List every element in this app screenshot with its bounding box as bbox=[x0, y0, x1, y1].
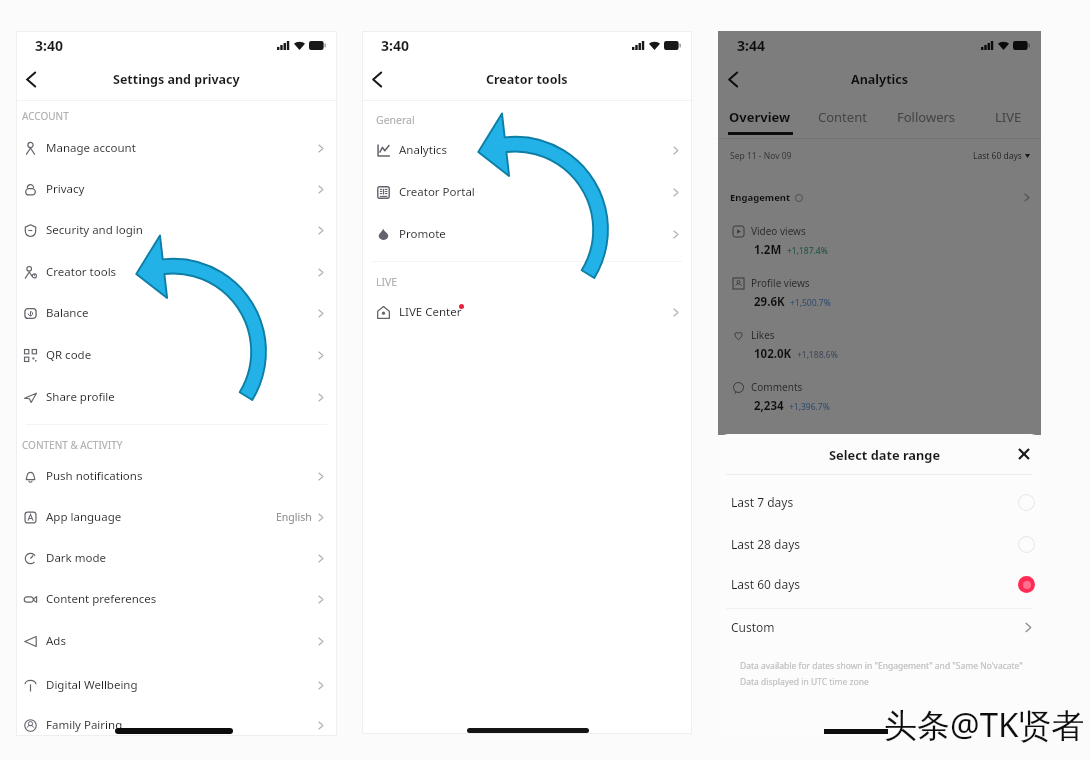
button[interactable]: Security and login bbox=[16, 212, 337, 248]
staticText: Family Pairing bbox=[46, 717, 123, 733]
button[interactable]: Close bbox=[1012, 442, 1036, 466]
button[interactable]: LIVE Center bbox=[362, 294, 692, 330]
button[interactable]: Last 60 days bbox=[973, 150, 1030, 162]
staticText: General bbox=[376, 113, 415, 127]
staticText: 3:40 bbox=[381, 36, 409, 55]
staticText: +1,500.7% bbox=[790, 297, 831, 309]
staticText: Dark mode bbox=[46, 550, 106, 566]
staticText: Overview bbox=[729, 108, 791, 126]
staticText: Security and login bbox=[46, 222, 143, 238]
staticText: Digital Wellbeing bbox=[46, 677, 138, 693]
staticText: English bbox=[276, 510, 312, 524]
staticText: Privacy bbox=[46, 181, 85, 197]
staticText: Likes bbox=[751, 328, 775, 342]
staticText: Followers bbox=[897, 108, 956, 126]
button[interactable]: Privacy bbox=[16, 171, 337, 207]
button[interactable]: QR code bbox=[16, 337, 337, 373]
staticText: LIVE bbox=[376, 275, 398, 289]
button[interactable]: Last 7 days bbox=[718, 481, 1041, 523]
button[interactable]: Last 28 days bbox=[718, 523, 1041, 565]
staticText: Creator tools bbox=[486, 71, 568, 88]
staticText: Last 60 days bbox=[731, 576, 801, 592]
button[interactable]: Creator tools bbox=[16, 254, 337, 290]
staticText: 3:40 bbox=[35, 36, 63, 55]
staticText: LIVE Center bbox=[399, 304, 462, 320]
staticText: Data available for dates shown in "Engag… bbox=[740, 660, 1023, 672]
staticText: 头条@TK贤者 bbox=[884, 702, 1085, 747]
staticText: Data displayed in UTC time zone bbox=[740, 676, 869, 688]
button[interactable]: Push notifications bbox=[16, 458, 337, 494]
staticText: Settings and privacy bbox=[113, 71, 240, 88]
staticText: Manage account bbox=[46, 140, 136, 156]
button[interactable]: Dark mode bbox=[16, 540, 337, 576]
button[interactable]: Followers bbox=[888, 104, 964, 129]
button[interactable]: Last 60 days bbox=[718, 563, 1041, 605]
staticText: Creator Portal bbox=[399, 184, 475, 200]
staticText: Last 28 days bbox=[731, 536, 801, 552]
staticText: LIVE bbox=[995, 108, 1022, 126]
button[interactable]: Ads bbox=[16, 623, 337, 659]
staticText: QR code bbox=[46, 347, 92, 363]
button[interactable]: Custom bbox=[718, 606, 1041, 648]
staticText: Share profile bbox=[46, 389, 115, 405]
staticText: Sep 11 - Nov 09 bbox=[730, 150, 792, 162]
button[interactable]: Balance bbox=[16, 295, 337, 331]
staticText: 29.6K bbox=[754, 294, 785, 310]
staticText: Engagement bbox=[730, 191, 791, 204]
staticText: Balance bbox=[46, 305, 89, 321]
staticText: +1,396.7% bbox=[789, 401, 830, 413]
staticText: Content preferences bbox=[46, 591, 157, 607]
staticText: Select date range bbox=[829, 446, 941, 463]
staticText: 102.0K bbox=[754, 346, 792, 362]
button[interactable]: Family Pairing bbox=[16, 707, 337, 743]
staticText: Push notifications bbox=[46, 468, 143, 484]
staticText: 1.2M bbox=[754, 242, 782, 258]
button[interactable]: Share profile bbox=[16, 379, 337, 415]
staticText: Comments bbox=[751, 380, 803, 394]
staticText: 2,234 bbox=[754, 398, 784, 414]
button[interactable]: Creator Portal bbox=[362, 174, 692, 210]
button[interactable]: App language bbox=[16, 499, 337, 535]
button[interactable]: Promote bbox=[362, 216, 692, 252]
button[interactable]: Content preferences bbox=[16, 581, 337, 617]
staticText: +1,188.6% bbox=[797, 349, 838, 361]
button[interactable]: Digital Wellbeing bbox=[16, 667, 337, 703]
staticText: Custom bbox=[731, 619, 775, 635]
staticText: Content bbox=[818, 108, 867, 126]
staticText: Profile views bbox=[751, 276, 810, 290]
button[interactable]: Overview bbox=[722, 104, 798, 129]
staticText: Promote bbox=[399, 226, 446, 242]
staticText: Last 60 days bbox=[973, 150, 1022, 162]
staticText: Ads bbox=[46, 633, 66, 649]
staticText: Analytics bbox=[851, 71, 909, 88]
staticText: ACCOUNT bbox=[22, 109, 69, 123]
button[interactable]: LIVE bbox=[970, 104, 1046, 129]
button[interactable]: Analytics bbox=[362, 132, 692, 168]
staticText: +1,187.4% bbox=[787, 245, 828, 257]
button[interactable]: Manage account bbox=[16, 130, 337, 166]
button[interactable]: Back bbox=[17, 65, 45, 93]
button[interactable]: Back bbox=[363, 65, 391, 93]
staticText: Analytics bbox=[399, 142, 447, 158]
staticText: Last 7 days bbox=[731, 494, 794, 510]
staticText: 3:44 bbox=[737, 36, 765, 55]
staticText: CONTENT & ACTIVITY bbox=[22, 438, 123, 452]
staticText: Video views bbox=[751, 224, 806, 238]
staticText: Creator tools bbox=[46, 264, 117, 280]
staticText: App language bbox=[46, 509, 122, 525]
button[interactable]: Content bbox=[804, 104, 880, 129]
button[interactable]: Back bbox=[719, 65, 747, 93]
